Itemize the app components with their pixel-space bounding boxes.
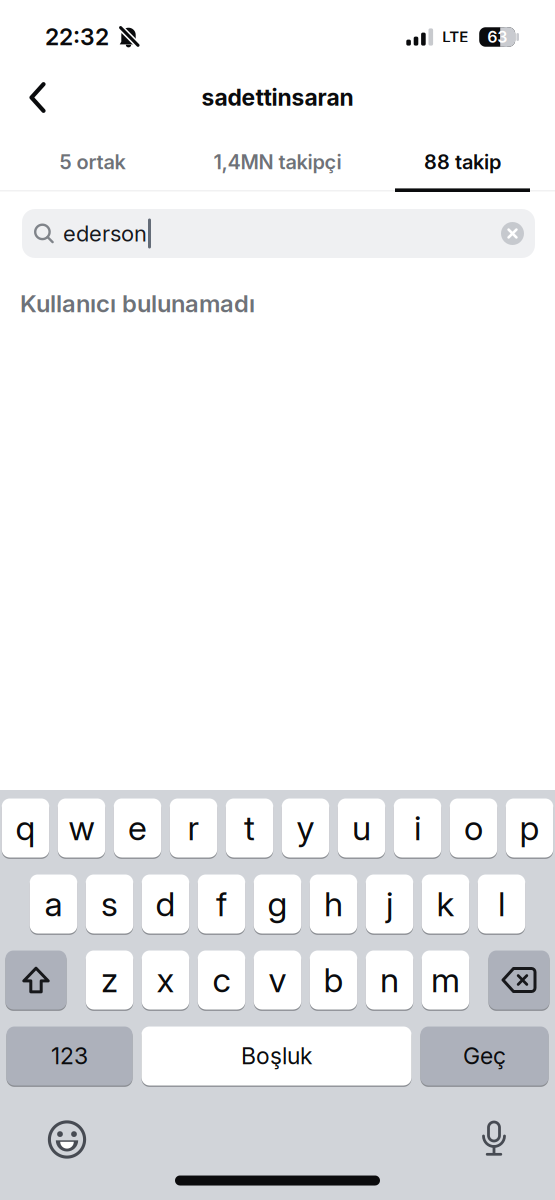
staticText: u xyxy=(352,807,371,848)
staticText: sadettinsaran xyxy=(201,84,353,111)
button[interactable]: 123 xyxy=(6,1026,132,1085)
button[interactable]: f xyxy=(198,874,245,933)
staticText: Kullanıcı bulunamadı xyxy=(20,289,255,318)
staticText: o xyxy=(464,807,483,848)
button[interactable]: Shift xyxy=(5,950,66,1009)
button[interactable]: y xyxy=(282,798,329,857)
button[interactable]: c xyxy=(198,950,245,1009)
staticText: l xyxy=(498,883,505,924)
button[interactable]: 5 ortak xyxy=(0,121,185,192)
staticText: g xyxy=(267,883,287,924)
staticText: ederson xyxy=(63,220,147,247)
staticText: y xyxy=(296,807,314,848)
staticText: 88 takip xyxy=(424,150,501,174)
button[interactable]: 88 takip xyxy=(370,121,555,192)
staticText: b xyxy=(323,959,343,1000)
button[interactable]: s xyxy=(86,874,133,933)
button[interactable]: 1,4MN takipçi xyxy=(185,121,370,192)
button[interactable]: u xyxy=(338,798,385,857)
button[interactable]: r xyxy=(170,798,217,857)
button[interactable]: h xyxy=(310,874,357,933)
button[interactable]: j xyxy=(366,874,413,933)
staticText: 22:32 xyxy=(45,23,109,51)
button[interactable]: x xyxy=(142,950,189,1009)
staticText: a xyxy=(44,883,62,924)
staticText: c xyxy=(212,959,230,1000)
staticText: 63 xyxy=(487,27,507,47)
staticText: h xyxy=(324,883,343,924)
staticText: m xyxy=(431,959,460,1000)
staticText: z xyxy=(101,959,118,1000)
staticText: w xyxy=(68,807,94,848)
staticText: 5 ortak xyxy=(59,150,125,174)
button[interactable]: l xyxy=(478,874,525,933)
button[interactable]: o xyxy=(450,798,497,857)
button[interactable]: k xyxy=(422,874,469,933)
staticText: s xyxy=(101,883,118,924)
button[interactable]: z xyxy=(86,950,133,1009)
button[interactable]: t xyxy=(226,798,273,857)
staticText: j xyxy=(386,883,393,924)
button[interactable]: e xyxy=(114,798,161,857)
button[interactable]: b xyxy=(310,950,357,1009)
staticText: e xyxy=(128,807,147,848)
staticText: n xyxy=(380,959,399,1000)
button[interactable]: Back xyxy=(0,82,67,113)
button[interactable]: Boşluk xyxy=(141,1026,411,1085)
staticText: p xyxy=(519,807,539,848)
button[interactable]: v xyxy=(254,950,301,1009)
staticText: x xyxy=(156,959,174,1000)
staticText: f xyxy=(216,883,227,924)
button[interactable]: Delete xyxy=(488,950,549,1009)
button[interactable]: Search xyxy=(22,209,535,258)
button[interactable]: p xyxy=(506,798,553,857)
button[interactable]: Geç xyxy=(420,1026,548,1085)
staticText: d xyxy=(155,883,175,924)
staticText: q xyxy=(15,807,35,848)
button[interactable]: w xyxy=(58,798,105,857)
button[interactable]: Emoji xyxy=(47,1119,87,1159)
button[interactable]: Clear search xyxy=(493,222,535,245)
button[interactable]: i xyxy=(394,798,441,857)
staticText: t xyxy=(244,807,255,848)
staticText: k xyxy=(436,883,454,924)
button[interactable]: q xyxy=(2,798,49,857)
staticText: Boşluk xyxy=(241,1042,312,1070)
button[interactable]: n xyxy=(366,950,413,1009)
button[interactable]: a xyxy=(30,874,77,933)
staticText: r xyxy=(187,807,199,848)
button[interactable]: g xyxy=(254,874,301,933)
staticText: Geç xyxy=(463,1042,506,1070)
button[interactable]: m xyxy=(422,950,469,1009)
staticText: 1,4MN takipçi xyxy=(213,150,341,174)
staticText: LTE xyxy=(442,28,468,46)
staticText: 123 xyxy=(51,1042,88,1070)
staticText: v xyxy=(268,959,286,1000)
staticText: i xyxy=(414,807,421,848)
button[interactable]: Dictation xyxy=(479,1119,509,1159)
button[interactable]: d xyxy=(142,874,189,933)
